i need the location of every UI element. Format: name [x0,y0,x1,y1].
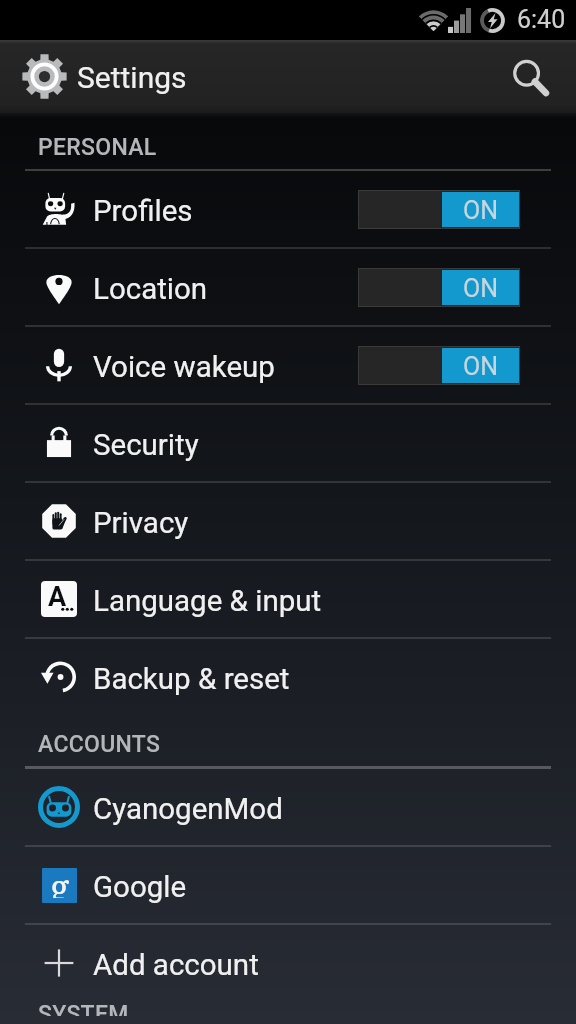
staticText: ACCOUNTS [38,731,161,758]
button[interactable]: Profiles [0,171,576,247]
staticText: 6:40 [517,5,566,34]
staticText: Language & input [93,584,322,619]
staticText: Google [93,870,187,905]
button[interactable]: Voice wakeup [0,327,576,403]
staticText: SYSTEM [38,1001,129,1016]
staticText: Settings [77,60,187,95]
staticText: ON [463,274,499,303]
button[interactable]: ON [358,268,520,307]
button[interactable]: ON [358,190,520,229]
staticText: Profiles [93,194,193,229]
button[interactable]: ON [358,346,520,385]
staticText: ON [463,196,499,225]
button[interactable]: Backup & reset [0,639,576,715]
button[interactable]: A [0,561,576,637]
button[interactable]: Add account [0,925,576,1001]
button[interactable]: Search [498,45,562,109]
staticText: Voice wakeup [93,350,275,385]
button[interactable]: g [0,847,576,923]
staticText: Add account [93,948,259,983]
staticText: CyanogenMod [93,792,283,827]
staticText: Backup & reset [93,662,290,697]
button[interactable]: Location [0,249,576,325]
staticText: g [50,868,70,898]
button[interactable]: CyanogenMod [0,769,576,845]
staticText: Privacy [93,506,189,541]
staticText: ON [463,352,499,381]
staticText: Location [93,272,208,307]
staticText: A [48,581,67,613]
staticText: PERSONAL [38,134,157,161]
staticText: Security [93,428,199,463]
button[interactable]: Privacy [0,483,576,559]
button[interactable]: Security [0,405,576,481]
